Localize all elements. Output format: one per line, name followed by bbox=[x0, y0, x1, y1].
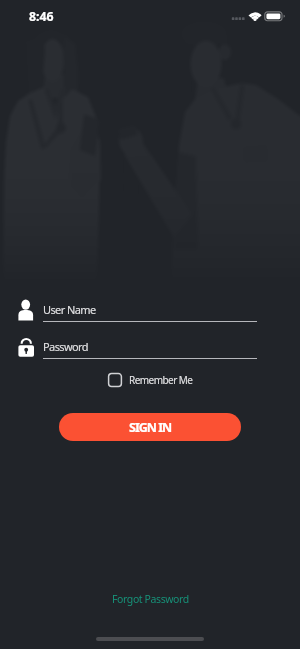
button[interactable]: SIGN IN bbox=[59, 413, 241, 441]
staticText: SIGN IN bbox=[129, 419, 172, 436]
other: Password bbox=[18, 338, 35, 357]
staticText: Remember Me bbox=[129, 373, 193, 387]
staticText: Password bbox=[43, 339, 88, 354]
button[interactable]: Remember Me bbox=[108, 369, 193, 390]
other: User name bbox=[18, 299, 34, 321]
button[interactable]: User name bbox=[10, 296, 260, 324]
button[interactable]: Forgot Password bbox=[112, 592, 189, 606]
staticText: Forgot Password bbox=[112, 592, 189, 606]
staticText: 8:46 bbox=[29, 8, 54, 25]
button[interactable]: Password bbox=[10, 333, 260, 361]
staticText: User Name bbox=[43, 302, 96, 317]
